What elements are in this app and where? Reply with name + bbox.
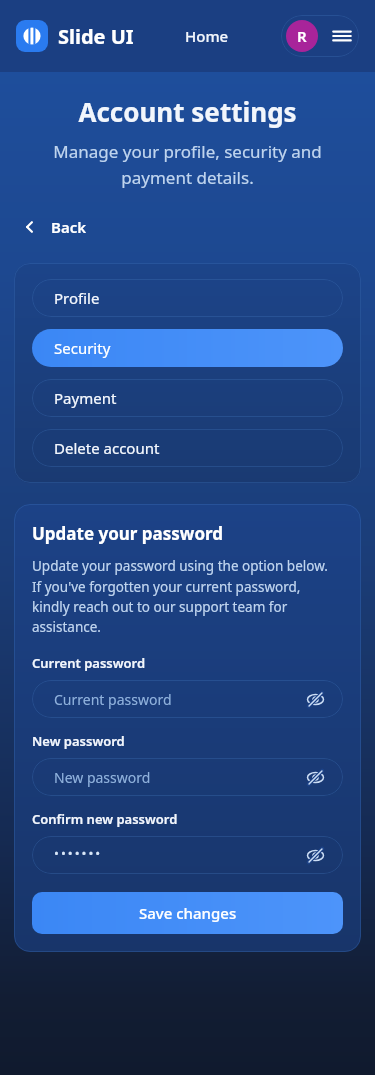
staticText: Account settings: [0, 94, 375, 129]
button[interactable]: Show password: [303, 843, 327, 867]
staticText: Delete account: [54, 438, 160, 458]
button[interactable]: New password: [32, 758, 343, 796]
staticText: Profile: [54, 288, 100, 308]
staticText: Back: [51, 217, 87, 237]
button[interactable]: Slide UI home: [16, 20, 48, 52]
staticText: Update your password: [32, 522, 224, 545]
staticText: Confirm new password: [32, 810, 178, 828]
staticText: Current password: [54, 690, 303, 709]
staticText: New password: [54, 768, 303, 787]
button[interactable]: Slide UI: [58, 23, 134, 50]
staticText: Current password: [32, 654, 146, 672]
button[interactable]: Profile: [32, 279, 343, 317]
staticText: Security: [54, 338, 111, 358]
button[interactable]: Show password: [303, 765, 327, 789]
staticText: Payment: [54, 388, 117, 408]
button[interactable]: Payment: [32, 379, 343, 417]
button[interactable]: Show password: [303, 687, 327, 711]
button[interactable]: Home: [179, 26, 235, 46]
button[interactable]: Security: [32, 329, 343, 367]
button[interactable]: Delete account: [32, 429, 343, 467]
button[interactable]: Save changes: [32, 892, 343, 934]
staticText: Save changes: [139, 903, 237, 923]
button[interactable]: Account menu: [281, 15, 359, 57]
staticText: Update your password using the option be…: [32, 557, 328, 636]
staticText: •••••••: [54, 844, 303, 862]
staticText: Manage your profile, security and paymen…: [20, 140, 355, 189]
button[interactable]: Current password: [32, 680, 343, 718]
staticText: R: [297, 26, 307, 46]
button[interactable]: •••••••: [32, 836, 343, 874]
staticText: New password: [32, 732, 125, 750]
button[interactable]: Back: [14, 213, 95, 241]
